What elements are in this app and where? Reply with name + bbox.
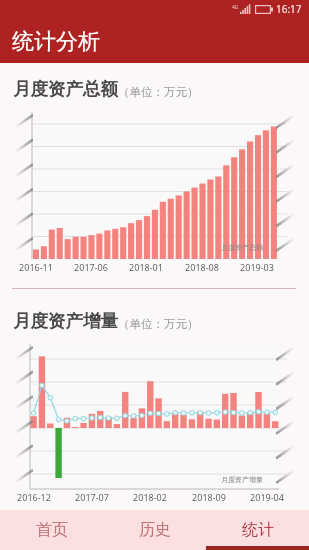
button[interactable]: 首页 <box>0 510 103 550</box>
staticText: 2018-09 <box>189 491 229 503</box>
staticText: 2017-07 <box>72 491 112 503</box>
staticText: 2019-03 <box>237 261 277 273</box>
staticText: 2018-01 <box>126 261 166 273</box>
staticText: 月度资产增量 <box>221 475 263 484</box>
staticText: （单位：万元） <box>118 317 199 331</box>
staticText: 4G <box>232 4 239 11</box>
staticText: 统计分析 <box>12 28 100 56</box>
staticText: 统计 <box>242 520 274 540</box>
staticText: 月度资产总额 <box>13 78 118 100</box>
staticText: 月度资产总额 <box>221 243 263 252</box>
staticText: 2016-11 <box>16 261 56 273</box>
staticText: 16:17 <box>276 2 302 16</box>
staticText: 2016-12 <box>14 491 54 503</box>
staticText: 首页 <box>36 520 68 540</box>
staticText: （单位：万元） <box>118 85 199 99</box>
staticText: 2018-08 <box>182 261 222 273</box>
staticText: 月度资产增量 <box>13 310 118 332</box>
staticText: 2019-04 <box>247 491 287 503</box>
staticText: 2018-02 <box>130 491 170 503</box>
staticText: 2017-06 <box>71 261 111 273</box>
button[interactable]: 统计 <box>206 510 309 550</box>
staticText: 历史 <box>139 520 171 540</box>
button[interactable]: 历史 <box>103 510 206 550</box>
